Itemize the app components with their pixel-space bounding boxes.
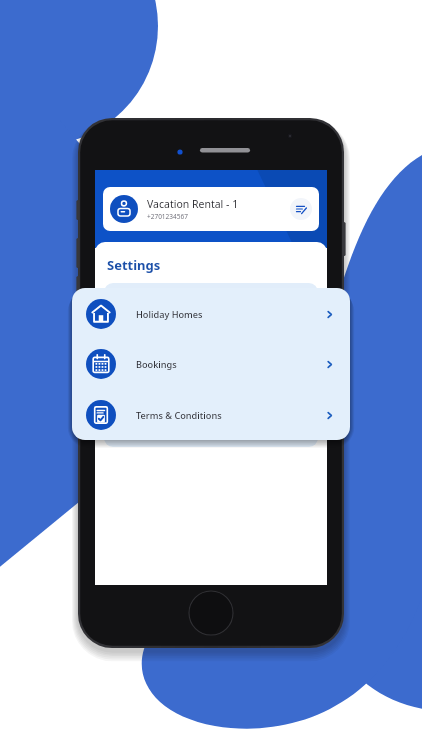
button[interactable]: Holiday Homes — [104, 287, 318, 313]
staticText: Vacation Rental - 1 — [147, 197, 239, 211]
button[interactable]: Log Out — [104, 417, 318, 443]
button[interactable]: Terms & Conditions — [72, 390, 350, 440]
button[interactable]: Edit profile — [290, 198, 312, 220]
button[interactable]: Bookings — [72, 339, 350, 389]
button[interactable]: Terms & Conditions — [104, 339, 318, 365]
staticText: Settings — [107, 256, 161, 274]
staticText: Terms & Conditions — [136, 409, 325, 422]
staticText: +2701234567 — [147, 212, 188, 221]
button[interactable]: Holiday Homes — [72, 289, 350, 339]
button[interactable]: Privacy — [104, 365, 318, 391]
button[interactable]: Vacation Rental - 1 — [103, 187, 319, 231]
staticText: Bookings — [136, 358, 325, 371]
staticText: Holiday Homes — [136, 308, 325, 321]
button[interactable]: Bookings — [104, 313, 318, 339]
button[interactable]: Contact Us — [104, 391, 318, 417]
